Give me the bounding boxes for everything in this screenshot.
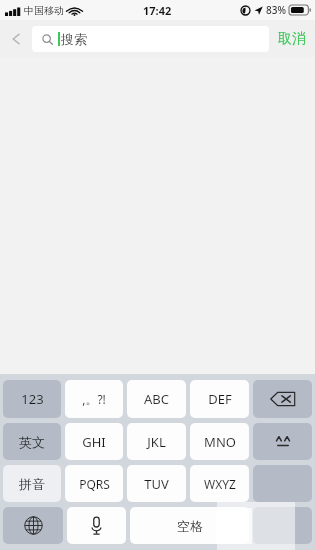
staticText: ABC (144, 390, 169, 408)
button[interactable]: 英文 (3, 423, 61, 460)
staticText: 123 (21, 390, 44, 408)
button[interactable]: Voice input (67, 507, 126, 544)
staticText: DEF (208, 390, 232, 408)
button[interactable]: Search (253, 507, 312, 544)
staticText: 英文 (19, 434, 45, 450)
button[interactable]: Switch keyboard (3, 507, 63, 544)
button[interactable]: 取消 (269, 20, 315, 57)
staticText: GHI (82, 433, 106, 451)
staticText: 搜索 (61, 31, 87, 47)
staticText: ,。?! (82, 391, 106, 407)
button[interactable]: TUV (127, 465, 186, 502)
button[interactable]: MNO (190, 423, 249, 460)
staticText: JKL (147, 433, 166, 451)
button[interactable]: JKL (127, 423, 186, 460)
staticText: TUV (144, 475, 169, 493)
staticText: 83% (266, 3, 286, 17)
button[interactable]: 搜索 (32, 26, 269, 52)
button[interactable]: ABC (127, 380, 186, 418)
button[interactable]: 拼音 (3, 465, 61, 502)
button[interactable]: GHI (65, 423, 123, 460)
button[interactable]: DEF (190, 380, 249, 418)
staticText: 拼音 (19, 476, 45, 492)
button[interactable]: Back (0, 20, 32, 57)
button[interactable]: Shift (253, 423, 312, 460)
button[interactable]: 123 (3, 380, 61, 418)
staticText: 空格 (177, 518, 203, 534)
button[interactable]: WXYZ (190, 465, 249, 502)
staticText: 17:42 (143, 3, 172, 18)
staticText: 中国移动 (24, 4, 64, 17)
button[interactable]: 空格 (130, 507, 249, 544)
button[interactable]: PQRS (65, 465, 123, 502)
button[interactable]: ,。?! (65, 380, 123, 418)
staticText: MNO (204, 433, 236, 451)
staticText: PQRS (79, 476, 110, 492)
staticText: WXYZ (204, 476, 236, 492)
button[interactable]: Backspace (253, 380, 312, 418)
staticText: 取消 (278, 30, 306, 48)
